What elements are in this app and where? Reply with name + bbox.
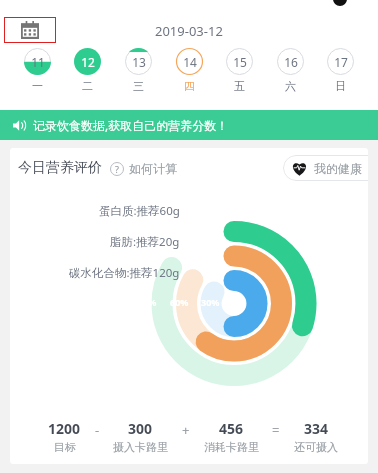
staticText: 二: [82, 79, 93, 93]
staticText: 碳水化合物:推荐120g: [69, 265, 180, 281]
staticText: 四: [184, 79, 195, 93]
staticText: 15: [233, 54, 247, 70]
staticText: 13: [132, 54, 146, 70]
button[interactable]: 13: [125, 48, 152, 93]
staticText: 目标: [54, 440, 76, 454]
staticText: 16: [284, 54, 298, 70]
staticText: -: [95, 421, 100, 439]
button[interactable]: 16: [277, 48, 304, 93]
button[interactable]: 12: [74, 48, 101, 93]
staticText: =: [272, 421, 280, 439]
staticText: 脂肪:推荐20g: [110, 234, 180, 250]
button[interactable]: 我的健康: [283, 155, 368, 181]
staticText: 334: [304, 419, 329, 438]
staticText: 50%: [138, 296, 157, 308]
button[interactable]: 17: [327, 48, 354, 93]
staticText: 三: [133, 79, 144, 93]
button[interactable]: 14: [176, 48, 203, 93]
button[interactable]: 11: [24, 48, 51, 93]
staticText: 12: [81, 54, 95, 70]
staticText: 30%: [201, 296, 220, 308]
button[interactable]: 记录饮食数据,获取自己的营养分数！: [0, 110, 378, 140]
staticText: 日: [335, 79, 346, 93]
staticText: 今日营养评价: [18, 159, 102, 177]
staticText: 还可摄入: [294, 440, 338, 454]
staticText: 456: [219, 419, 244, 438]
staticText: 2019-03-12: [155, 22, 223, 40]
staticText: 记录饮食数据,获取自己的营养分数！: [33, 117, 229, 133]
staticText: 300: [128, 419, 153, 438]
staticText: 六: [285, 79, 296, 93]
staticText: 1200: [48, 419, 81, 438]
staticText: 摄入卡路里: [113, 440, 168, 454]
button[interactable]: 15: [226, 48, 253, 93]
staticText: 17: [334, 54, 348, 70]
staticText: 如何计算: [129, 161, 177, 176]
staticText: 一: [32, 79, 43, 93]
staticText: 60%: [170, 296, 189, 308]
staticText: 五: [234, 79, 245, 93]
button[interactable]: ?: [110, 161, 177, 176]
staticText: +: [182, 421, 190, 439]
staticText: 消耗卡路里: [204, 440, 259, 454]
button[interactable]: Calendar: [4, 17, 56, 43]
staticText: ?: [115, 163, 119, 175]
staticText: 14: [183, 54, 197, 70]
staticText: 我的健康: [314, 161, 362, 176]
staticText: 11: [31, 54, 45, 70]
staticText: 蛋白质:推荐60g: [99, 203, 180, 219]
